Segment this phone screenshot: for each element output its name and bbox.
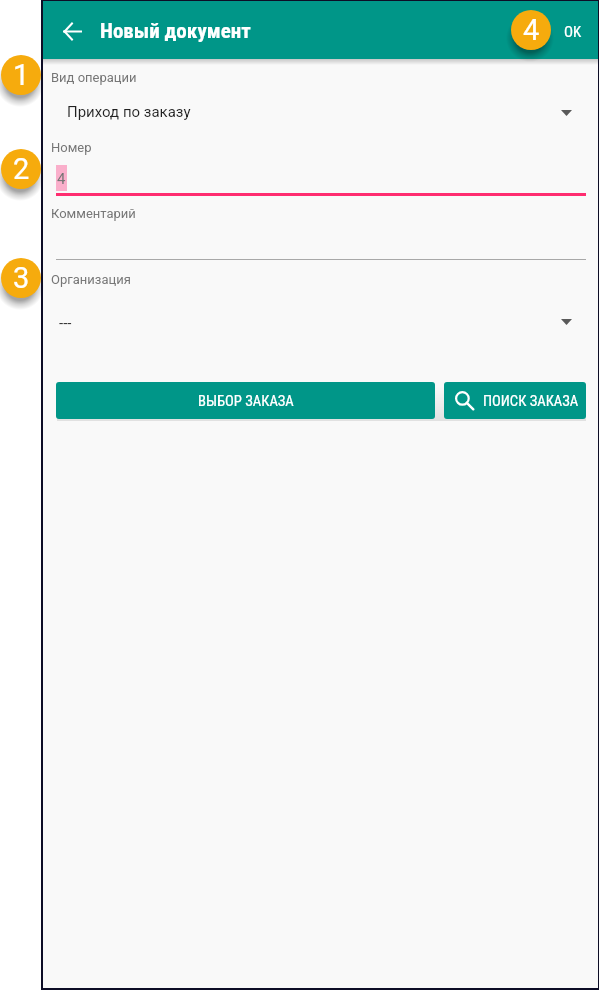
staticText: Комментарий [51,206,136,221]
button[interactable]: 4 [56,161,586,196]
staticText: ПОИСК ЗАКАЗА [483,392,579,409]
staticText: 4 [57,170,66,188]
staticText: 3 [13,261,30,295]
staticText: 4 [523,13,540,47]
staticText: Номер [51,140,92,155]
staticText: OK [564,23,582,41]
staticText: 2 [13,152,30,186]
button[interactable]: ВЫБОР ЗАКАЗА [56,382,435,419]
button[interactable] [56,227,586,260]
button[interactable]: Приход по заказу [43,97,598,127]
staticText: ВЫБОР ЗАКАЗА [198,392,294,409]
staticText: Вид операции [51,70,137,85]
button[interactable]: ПОИСК ЗАКАЗА [444,382,586,419]
button[interactable]: --- [43,309,598,337]
staticText: --- [59,314,72,332]
button[interactable]: OK [554,12,592,50]
staticText: Новый документ [100,19,251,44]
staticText: Организация [51,272,131,287]
button[interactable]: Back [54,13,90,49]
staticText: 1 [13,58,30,92]
staticText: Приход по заказу [67,103,191,121]
